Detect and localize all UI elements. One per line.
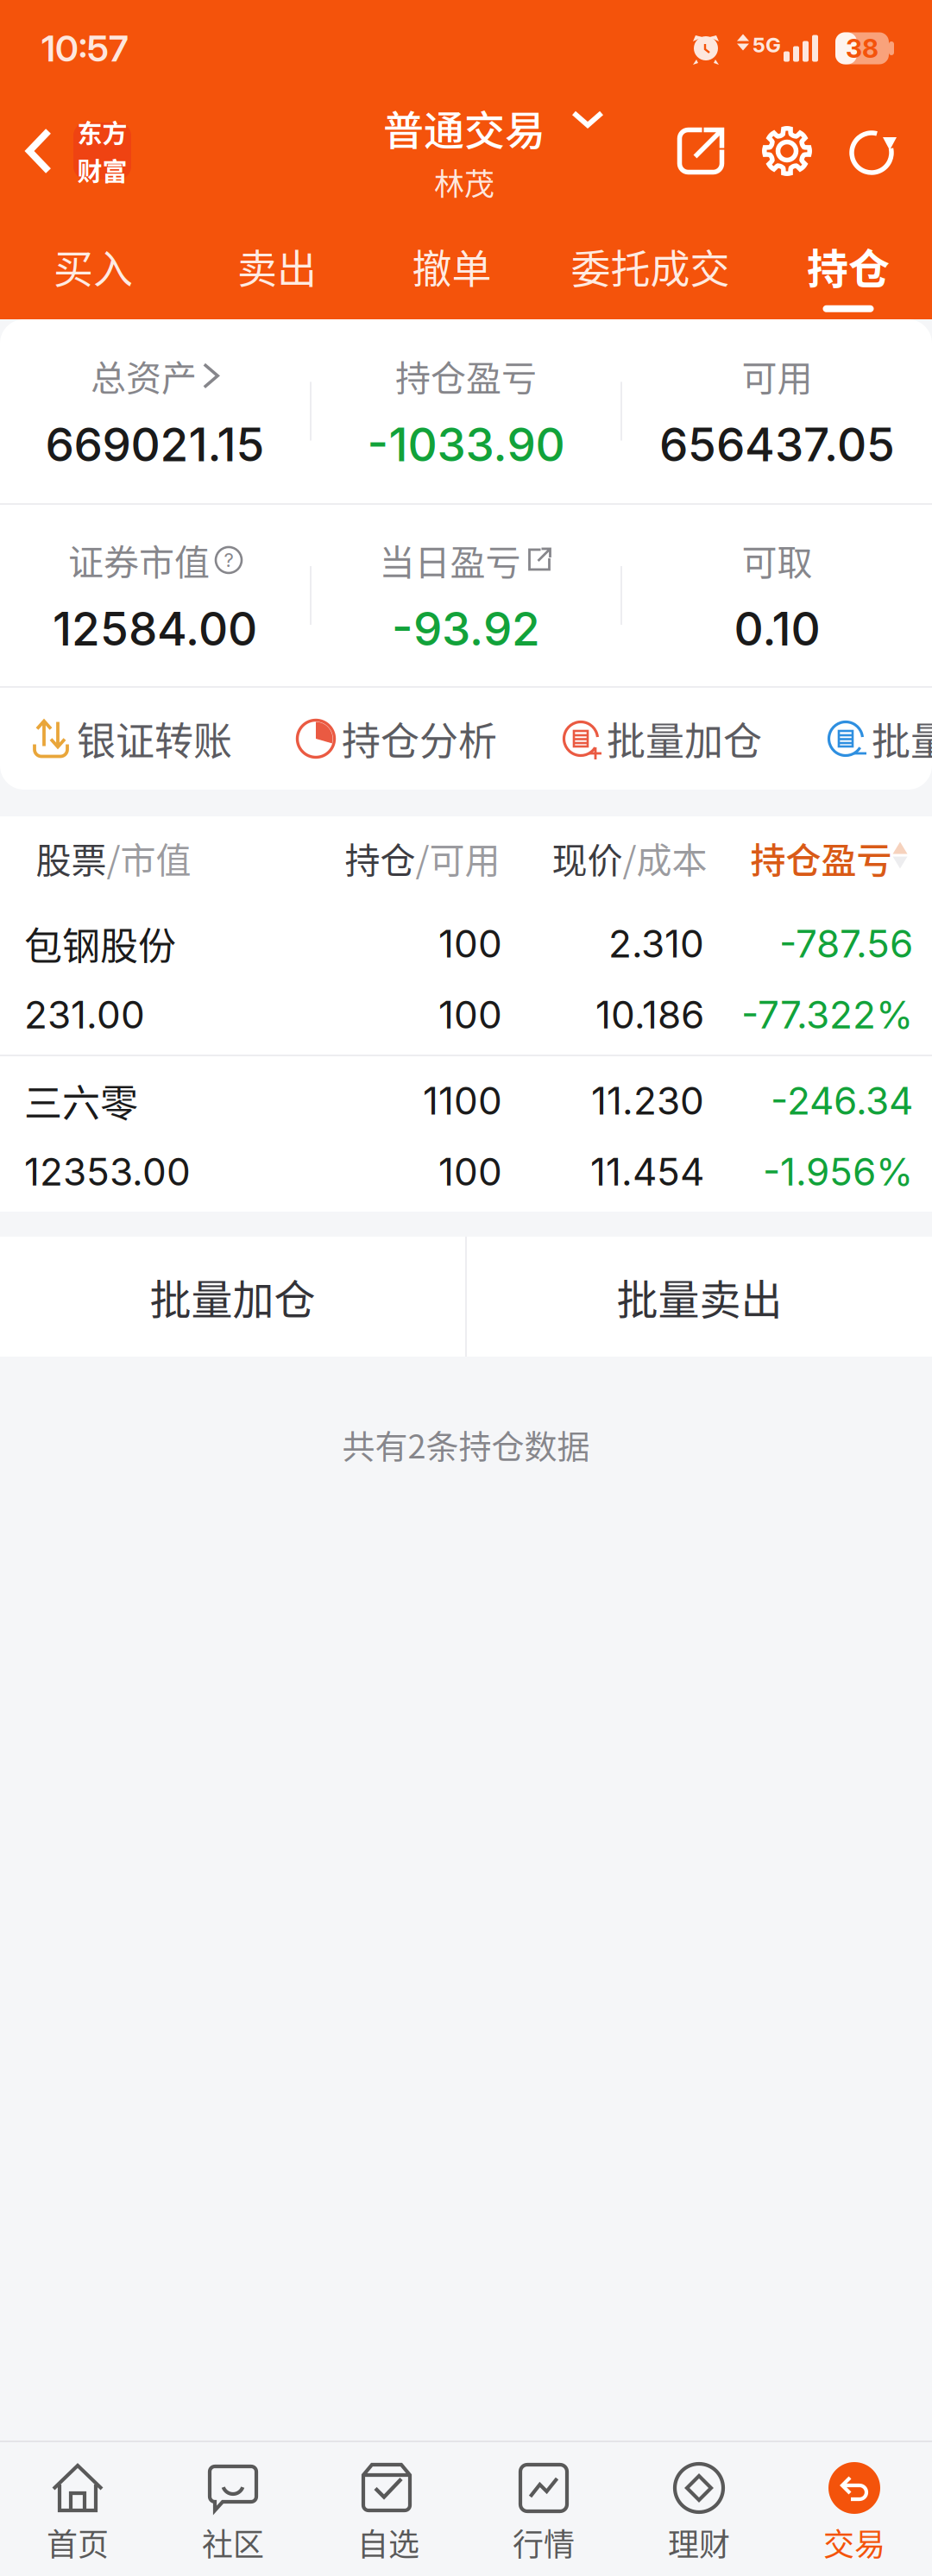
staticText: -93.92 (392, 601, 540, 656)
staticText: 市值 (120, 832, 191, 883)
staticText: 现价 (552, 832, 623, 883)
staticText: 1100 (423, 1078, 502, 1124)
button[interactable]: 普通交易 (383, 100, 604, 202)
staticText: -787.56 (779, 921, 913, 967)
staticText: 理财 (668, 2520, 730, 2565)
staticText: 总资产 (91, 350, 197, 401)
button[interactable]: 理财 (621, 2461, 777, 2576)
staticText: 委托成交 (571, 237, 730, 295)
staticText: 三六零 (24, 1073, 138, 1128)
staticText: 0.10 (734, 601, 820, 656)
staticText: 38 (846, 33, 878, 64)
staticText: 股票 (36, 832, 107, 883)
staticText: 持仓盈亏 (395, 350, 537, 401)
button[interactable]: 银证转账 (31, 688, 232, 790)
staticText: 自选 (357, 2520, 419, 2565)
staticText: 10:57 (41, 26, 129, 70)
staticText: 财富 (77, 152, 127, 188)
staticText: -77.322% (741, 992, 913, 1038)
staticText: 撤单 (412, 237, 491, 295)
staticText: 5G (753, 32, 781, 57)
staticText: / (107, 832, 120, 883)
staticText: 卖出 (237, 237, 317, 295)
button[interactable]: 行情 (466, 2461, 621, 2576)
button[interactable]: 持仓 (765, 209, 932, 316)
staticText: 林茂 (434, 160, 494, 204)
staticText: 普通交易 (383, 98, 545, 157)
staticText: 持仓分析 (342, 711, 497, 767)
staticText: -1033.90 (367, 417, 565, 472)
button[interactable]: 分享 (675, 100, 727, 202)
button[interactable]: 撤单 (368, 209, 536, 316)
staticText: 12353.00 (24, 1149, 191, 1195)
staticText: 当日盈亏 (379, 534, 521, 586)
button[interactable]: 买入 (0, 209, 186, 316)
staticText: 批量卖出 (617, 1267, 782, 1327)
staticText: 11.454 (590, 1149, 704, 1195)
staticText: 12584.00 (53, 601, 257, 656)
staticText: 证券市值 (68, 534, 210, 586)
staticText: 100 (438, 992, 502, 1038)
button[interactable]: 包钢股份 (0, 899, 932, 1055)
button[interactable]: 自选 (311, 2461, 466, 2576)
staticText: 100 (438, 1149, 502, 1195)
button[interactable]: 总资产 (0, 319, 310, 503)
button[interactable]: 三六零 (0, 1056, 932, 1212)
button[interactable]: 交易 (777, 2461, 932, 2576)
staticText: ? (224, 549, 233, 571)
staticText: -1.956% (763, 1149, 913, 1195)
staticText: 669021.15 (45, 417, 264, 472)
button[interactable]: 刷新 (847, 100, 899, 202)
staticText: 批量 (872, 711, 932, 767)
staticText: 东方 (77, 114, 127, 150)
button[interactable]: 首页 (0, 2461, 155, 2576)
staticText: 10.186 (595, 992, 704, 1038)
button[interactable]: 批量加仓 (0, 1237, 465, 1357)
button[interactable]: 设置 (761, 100, 813, 202)
staticText: 银证转账 (77, 711, 232, 767)
button[interactable]: 社区 (155, 2461, 311, 2576)
staticText: 批量加仓 (607, 711, 762, 767)
staticText: 成本 (636, 832, 707, 883)
staticText: 包钢股份 (24, 916, 176, 971)
staticText: 行情 (513, 2520, 575, 2565)
staticText: 持仓盈亏 (750, 832, 892, 883)
staticText: / (623, 832, 636, 883)
button[interactable]: 持仓盈亏 (707, 816, 907, 899)
staticText: 231.00 (24, 992, 145, 1038)
staticText: 100 (438, 921, 502, 967)
staticText: 可用 (429, 832, 500, 883)
staticText: 持仓 (807, 236, 890, 296)
staticText: 首页 (47, 2520, 109, 2565)
staticText: / (416, 832, 429, 883)
staticText: 可用 (742, 350, 812, 401)
staticText: -246.34 (771, 1078, 913, 1124)
button[interactable]: 返回 (0, 100, 143, 202)
button[interactable]: 卖出 (186, 209, 368, 316)
button[interactable]: 批量加仓 (561, 688, 762, 790)
button[interactable]: 批量卖出 (467, 1237, 932, 1357)
button[interactable]: 委托成交 (536, 209, 765, 316)
staticText: 共有2条持仓数据 (342, 1420, 590, 1468)
button[interactable]: 持仓分析 (296, 688, 497, 790)
staticText: 可取 (742, 534, 812, 586)
staticText: 买入 (54, 237, 133, 295)
staticText: 持仓 (345, 832, 416, 883)
button[interactable]: 当日盈亏 (312, 505, 620, 686)
staticText: 11.230 (591, 1078, 704, 1124)
staticText: 社区 (202, 2520, 264, 2565)
staticText: 交易 (823, 2520, 885, 2565)
staticText: 2.310 (608, 921, 704, 967)
staticText: 656437.05 (659, 417, 895, 472)
staticText: 批量加仓 (150, 1267, 315, 1327)
button[interactable]: 批量 (826, 688, 932, 790)
